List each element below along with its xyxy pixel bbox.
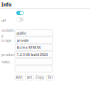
staticText: notes: [1, 59, 10, 64]
staticText: off: [1, 18, 6, 23]
button[interactable]: Del: [46, 75, 54, 80]
button[interactable]: Copy: [36, 75, 44, 80]
button[interactable]: Toggle off: [16, 17, 24, 22]
staticText: Del: [48, 76, 53, 79]
staticText: Edit: [27, 76, 32, 79]
staticText: public: [16, 30, 26, 35]
staticText: Info: [1, 1, 11, 8]
staticText: Add: [16, 76, 22, 79]
staticText: Acme MMXX: [16, 45, 40, 50]
button[interactable]: Add: [15, 75, 23, 80]
button[interactable]: Toggle on: [16, 11, 24, 15]
staticText: Copy: [36, 76, 43, 79]
button[interactable]: Edit: [25, 75, 33, 80]
staticText: private: [16, 37, 28, 43]
staticText: scope: [1, 37, 11, 43]
staticText: product: [1, 52, 14, 57]
staticText: 1.2.3 (4) build 2024: [16, 52, 47, 57]
staticText: visibility: [1, 28, 14, 38]
button[interactable]: Info: [1, 2, 11, 7]
